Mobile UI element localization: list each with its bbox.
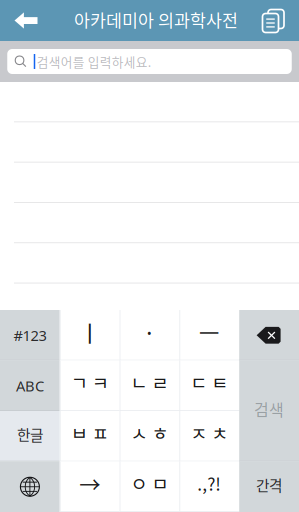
button[interactable]: ㅣ xyxy=(60,310,120,360)
button[interactable]: #123 xyxy=(0,310,60,360)
staticText: ㅇ ㅁ xyxy=(130,469,168,496)
button[interactable]: Documents xyxy=(247,0,299,41)
button[interactable]: ㄴ ㄹ xyxy=(120,360,179,411)
button[interactable]: ㅅ ㅎ xyxy=(120,411,179,461)
button[interactable]: ㄷ ㅌ xyxy=(179,360,239,411)
staticText: 아카데미아 의과학사전 xyxy=(74,7,238,32)
button[interactable]: ㅈ ㅊ xyxy=(179,411,239,461)
staticText: → xyxy=(79,468,100,499)
staticText: ㄷ ㅌ xyxy=(190,368,228,395)
staticText: 한글 xyxy=(17,424,43,445)
button[interactable]: Change keyboard xyxy=(0,461,60,512)
button[interactable]: Back xyxy=(0,0,52,41)
staticText: · xyxy=(143,315,156,348)
staticText: 검색 xyxy=(254,397,284,421)
staticText: ㄴ ㄹ xyxy=(130,368,168,395)
button[interactable]: 한글 xyxy=(0,411,60,461)
button[interactable]: ABC xyxy=(0,360,60,411)
button[interactable]: ㅡ xyxy=(179,310,239,360)
button[interactable]: Delete xyxy=(239,310,299,360)
staticText: ㅣ xyxy=(79,315,100,348)
button[interactable]: 검색 xyxy=(239,360,299,461)
staticText: ㅈ ㅊ xyxy=(190,419,228,446)
button[interactable]: ㄱ ㅋ xyxy=(60,360,120,411)
staticText: ㅡ xyxy=(199,315,220,348)
staticText: ㅂ ㅍ xyxy=(71,419,109,446)
button[interactable]: · xyxy=(120,310,179,360)
staticText: ㄱ ㅋ xyxy=(71,368,109,395)
staticText: ㅅ ㅎ xyxy=(130,419,168,446)
button[interactable]: ㅂ ㅍ xyxy=(60,411,120,461)
staticText: .,?! xyxy=(197,471,221,496)
staticText: #123 xyxy=(13,325,46,345)
staticText: 검색어를 입력하세요. xyxy=(37,52,152,71)
button[interactable]: ㅇ ㅁ xyxy=(120,461,179,512)
button[interactable]: .,?! xyxy=(179,461,239,512)
staticText: 간격 xyxy=(256,474,282,495)
button[interactable]: → xyxy=(60,461,120,512)
button[interactable]: 간격 xyxy=(239,461,299,512)
staticText: ABC xyxy=(16,376,44,396)
